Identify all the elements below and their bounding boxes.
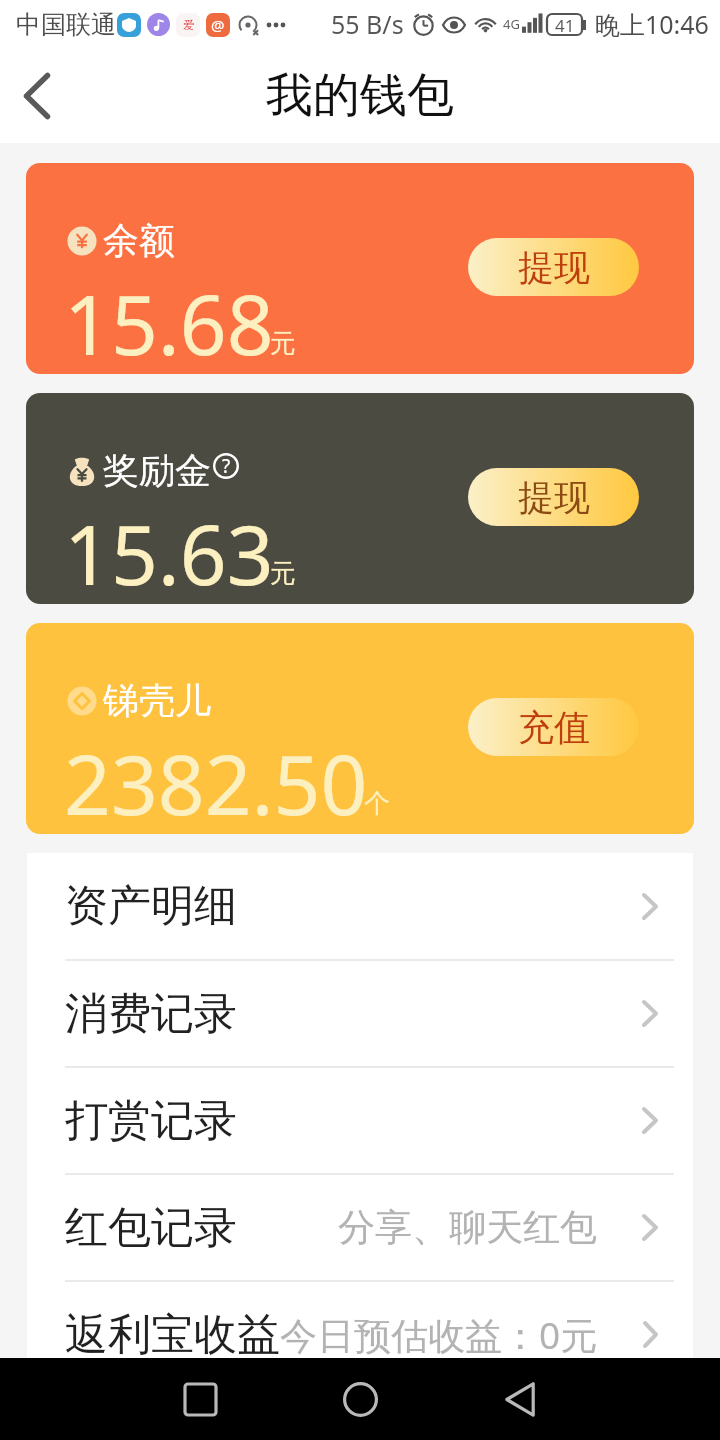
staticText: 余额 [103, 218, 175, 263]
button[interactable]: 红包记录 [27, 1175, 693, 1280]
staticText: 打赏记录 [65, 1094, 237, 1148]
button[interactable]: 消费记录 [27, 961, 693, 1066]
staticText: 锑壳儿 [103, 678, 211, 723]
button[interactable]: 提现 [468, 238, 639, 296]
button[interactable]: Recents [160, 1359, 240, 1439]
staticText: 奖励金 [103, 448, 211, 493]
button[interactable]: 提现 [468, 468, 639, 526]
staticText: 41 [555, 14, 575, 35]
staticText: 今日预估收益：0元 [280, 1309, 598, 1360]
staticText: 元 [270, 557, 296, 590]
staticText: 15.63 [64, 497, 274, 604]
staticText: 晚上10:46 [595, 7, 709, 41]
button[interactable]: Back [6, 65, 68, 127]
button[interactable]: 资产明细 [27, 853, 693, 959]
button[interactable]: 充值 [468, 698, 639, 756]
staticText: @ [211, 15, 225, 35]
button[interactable]: Back [480, 1359, 560, 1439]
staticText: 4G [503, 15, 520, 33]
staticText: 充值 [518, 705, 590, 750]
staticText: ? [222, 453, 231, 479]
button[interactable]: 打赏记录 [27, 1068, 693, 1173]
staticText: 资产明细 [65, 879, 237, 933]
staticText: 中国联通 [16, 9, 116, 40]
staticText: 提现 [518, 245, 590, 290]
staticText: 15.68 [64, 267, 274, 374]
button[interactable]: Home [320, 1359, 400, 1439]
staticText: 元 [270, 327, 296, 360]
staticText: 消费记录 [65, 987, 237, 1041]
staticText: 个 [364, 787, 390, 820]
staticText: 55 B/s [331, 7, 404, 41]
staticText: 红包记录 [65, 1201, 237, 1255]
staticText: 分享、聊天红包 [338, 1204, 597, 1251]
staticText: 2382.50 [64, 727, 368, 834]
staticText: 我的钱包 [266, 66, 454, 125]
staticText: 提现 [518, 475, 590, 520]
staticText: 返利宝收益 [65, 1308, 280, 1362]
button[interactable]: 返利宝收益 [27, 1282, 693, 1387]
staticText: 爱 [183, 18, 194, 32]
